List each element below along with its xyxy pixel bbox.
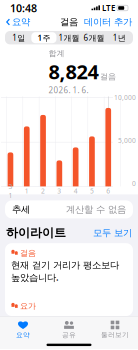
- button[interactable]: 1개월: [56, 32, 81, 43]
- staticText: 10:48: [10, 1, 37, 15]
- button[interactable]: 6개월: [82, 32, 107, 43]
- button[interactable]: 공유: [46, 316, 92, 339]
- button[interactable]: 요약: [2, 14, 33, 30]
- staticText: 둘러보기: [101, 331, 129, 339]
- staticText: 4: [74, 186, 78, 195]
- staticText: 6: [106, 186, 110, 195]
- button[interactable]: 추세: [5, 200, 133, 218]
- button[interactable]: 1주: [31, 32, 56, 43]
- button[interactable]: 데이터 추가: [80, 14, 136, 30]
- staticText: 2026. 1. 6.: [48, 85, 88, 95]
- staticText: 걸음: [20, 248, 36, 258]
- button[interactable]: 둘러보기: [92, 317, 138, 339]
- staticText: 데이터 추가: [84, 16, 132, 28]
- staticText: 합계: [48, 48, 64, 58]
- staticText: LTE: [102, 3, 115, 13]
- button[interactable]: 요약: [0, 316, 46, 339]
- staticText: 0: [132, 179, 136, 188]
- staticText: 추세: [12, 204, 30, 215]
- staticText: 1일: [12, 32, 25, 43]
- staticText: 걸음: [60, 16, 78, 28]
- button[interactable]: 1일: [6, 32, 31, 43]
- staticText: 요약: [12, 16, 30, 28]
- staticText: 31: [8, 182, 12, 200]
- staticText: 1: [25, 186, 29, 195]
- staticText: 걸음: [100, 72, 116, 81]
- button[interactable]: 모두 보기: [93, 227, 132, 238]
- staticText: 요가: [20, 301, 36, 311]
- staticText: 1주: [37, 32, 50, 43]
- staticText: 하이라이트: [6, 225, 66, 240]
- staticText: 2: [41, 186, 45, 195]
- staticText: 현재 걷기 거리가 평소보다 높았습니다.: [11, 259, 119, 283]
- staticText: 계산할 수 없음: [66, 204, 126, 215]
- staticText: 6개월: [84, 32, 105, 43]
- button[interactable]: 1년: [107, 32, 132, 43]
- staticText: 모두 보기: [93, 227, 132, 238]
- staticText: 10,000: [114, 93, 136, 102]
- staticText: 5: [90, 186, 94, 195]
- button[interactable]: 걸음: [5, 243, 133, 316]
- staticText: 5,000: [118, 136, 136, 145]
- staticText: 8,824: [48, 58, 98, 85]
- staticText: 1년: [113, 32, 126, 43]
- staticText: 3: [57, 186, 61, 195]
- staticText: 1개월: [58, 32, 79, 43]
- staticText: 공유: [62, 331, 76, 339]
- staticText: 요약: [16, 331, 30, 339]
